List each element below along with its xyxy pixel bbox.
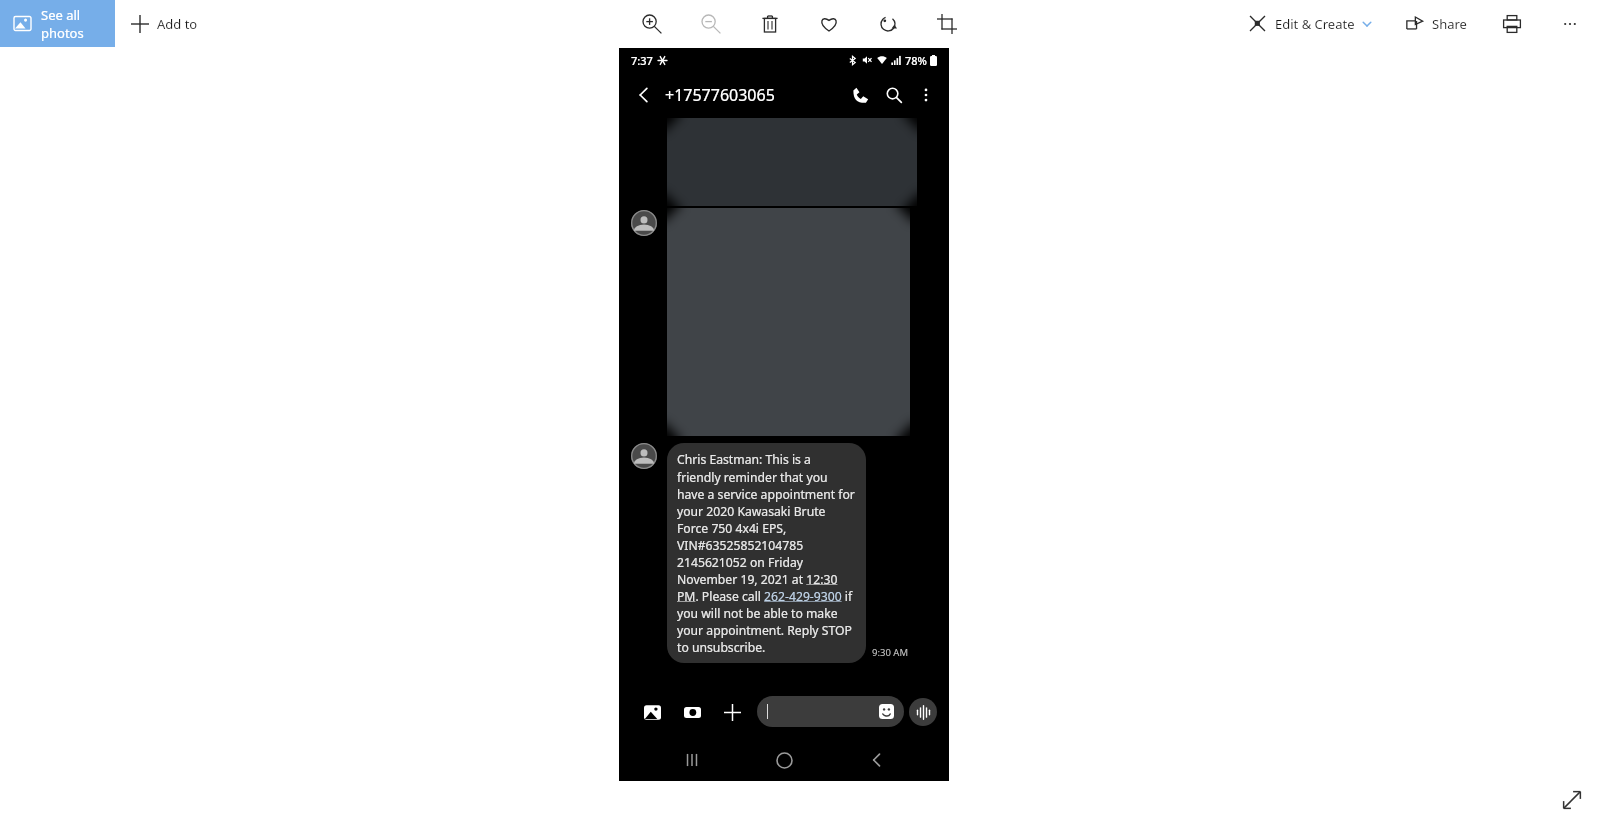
button[interactable]: Print bbox=[1495, 7, 1529, 41]
button[interactable]: Back bbox=[857, 740, 897, 780]
button[interactable]: Home bbox=[764, 740, 804, 780]
button[interactable]: Back bbox=[627, 78, 661, 112]
staticText: Edit & Create bbox=[1275, 15, 1355, 33]
button[interactable]: Recents bbox=[672, 740, 712, 780]
button[interactable]: Edit & Create bbox=[1243, 0, 1378, 47]
button[interactable]: See all photos bbox=[0, 0, 115, 47]
staticText: Add to bbox=[157, 15, 198, 33]
button[interactable]: Zoom in bbox=[635, 7, 669, 41]
button[interactable]: Search bbox=[877, 78, 911, 112]
staticText: Share bbox=[1432, 15, 1467, 33]
button[interactable]: Add to bbox=[125, 0, 204, 47]
button[interactable]: Rotate bbox=[871, 7, 905, 41]
button[interactable]: Zoom out bbox=[694, 7, 728, 41]
button[interactable]: Expand bbox=[1561, 789, 1583, 811]
button[interactable]: Crop bbox=[930, 7, 964, 41]
button[interactable]: More options bbox=[911, 80, 941, 110]
staticText: 78% bbox=[905, 53, 927, 68]
staticText: See all photos bbox=[41, 6, 115, 42]
staticText: Chris Eastman: This is a friendly remind… bbox=[677, 451, 856, 655]
button[interactable]: Camera bbox=[677, 697, 707, 727]
button[interactable]: Chris Eastman: This is a friendly remind… bbox=[667, 443, 866, 663]
button[interactable]: Favorite bbox=[812, 7, 846, 41]
staticText: 9:30 AM bbox=[872, 646, 909, 659]
button[interactable]: Share bbox=[1400, 0, 1473, 47]
staticText: 7:37 bbox=[631, 53, 653, 68]
button[interactable]: Gallery bbox=[637, 697, 667, 727]
button[interactable]: Add attachment bbox=[717, 697, 747, 727]
button[interactable]: Call bbox=[843, 78, 877, 112]
button[interactable]: Delete bbox=[753, 7, 787, 41]
staticText: +17577603065 bbox=[665, 84, 775, 106]
button[interactable] bbox=[757, 696, 904, 727]
button[interactable]: More options bbox=[1553, 7, 1587, 41]
button[interactable]: Voice message bbox=[909, 698, 937, 726]
